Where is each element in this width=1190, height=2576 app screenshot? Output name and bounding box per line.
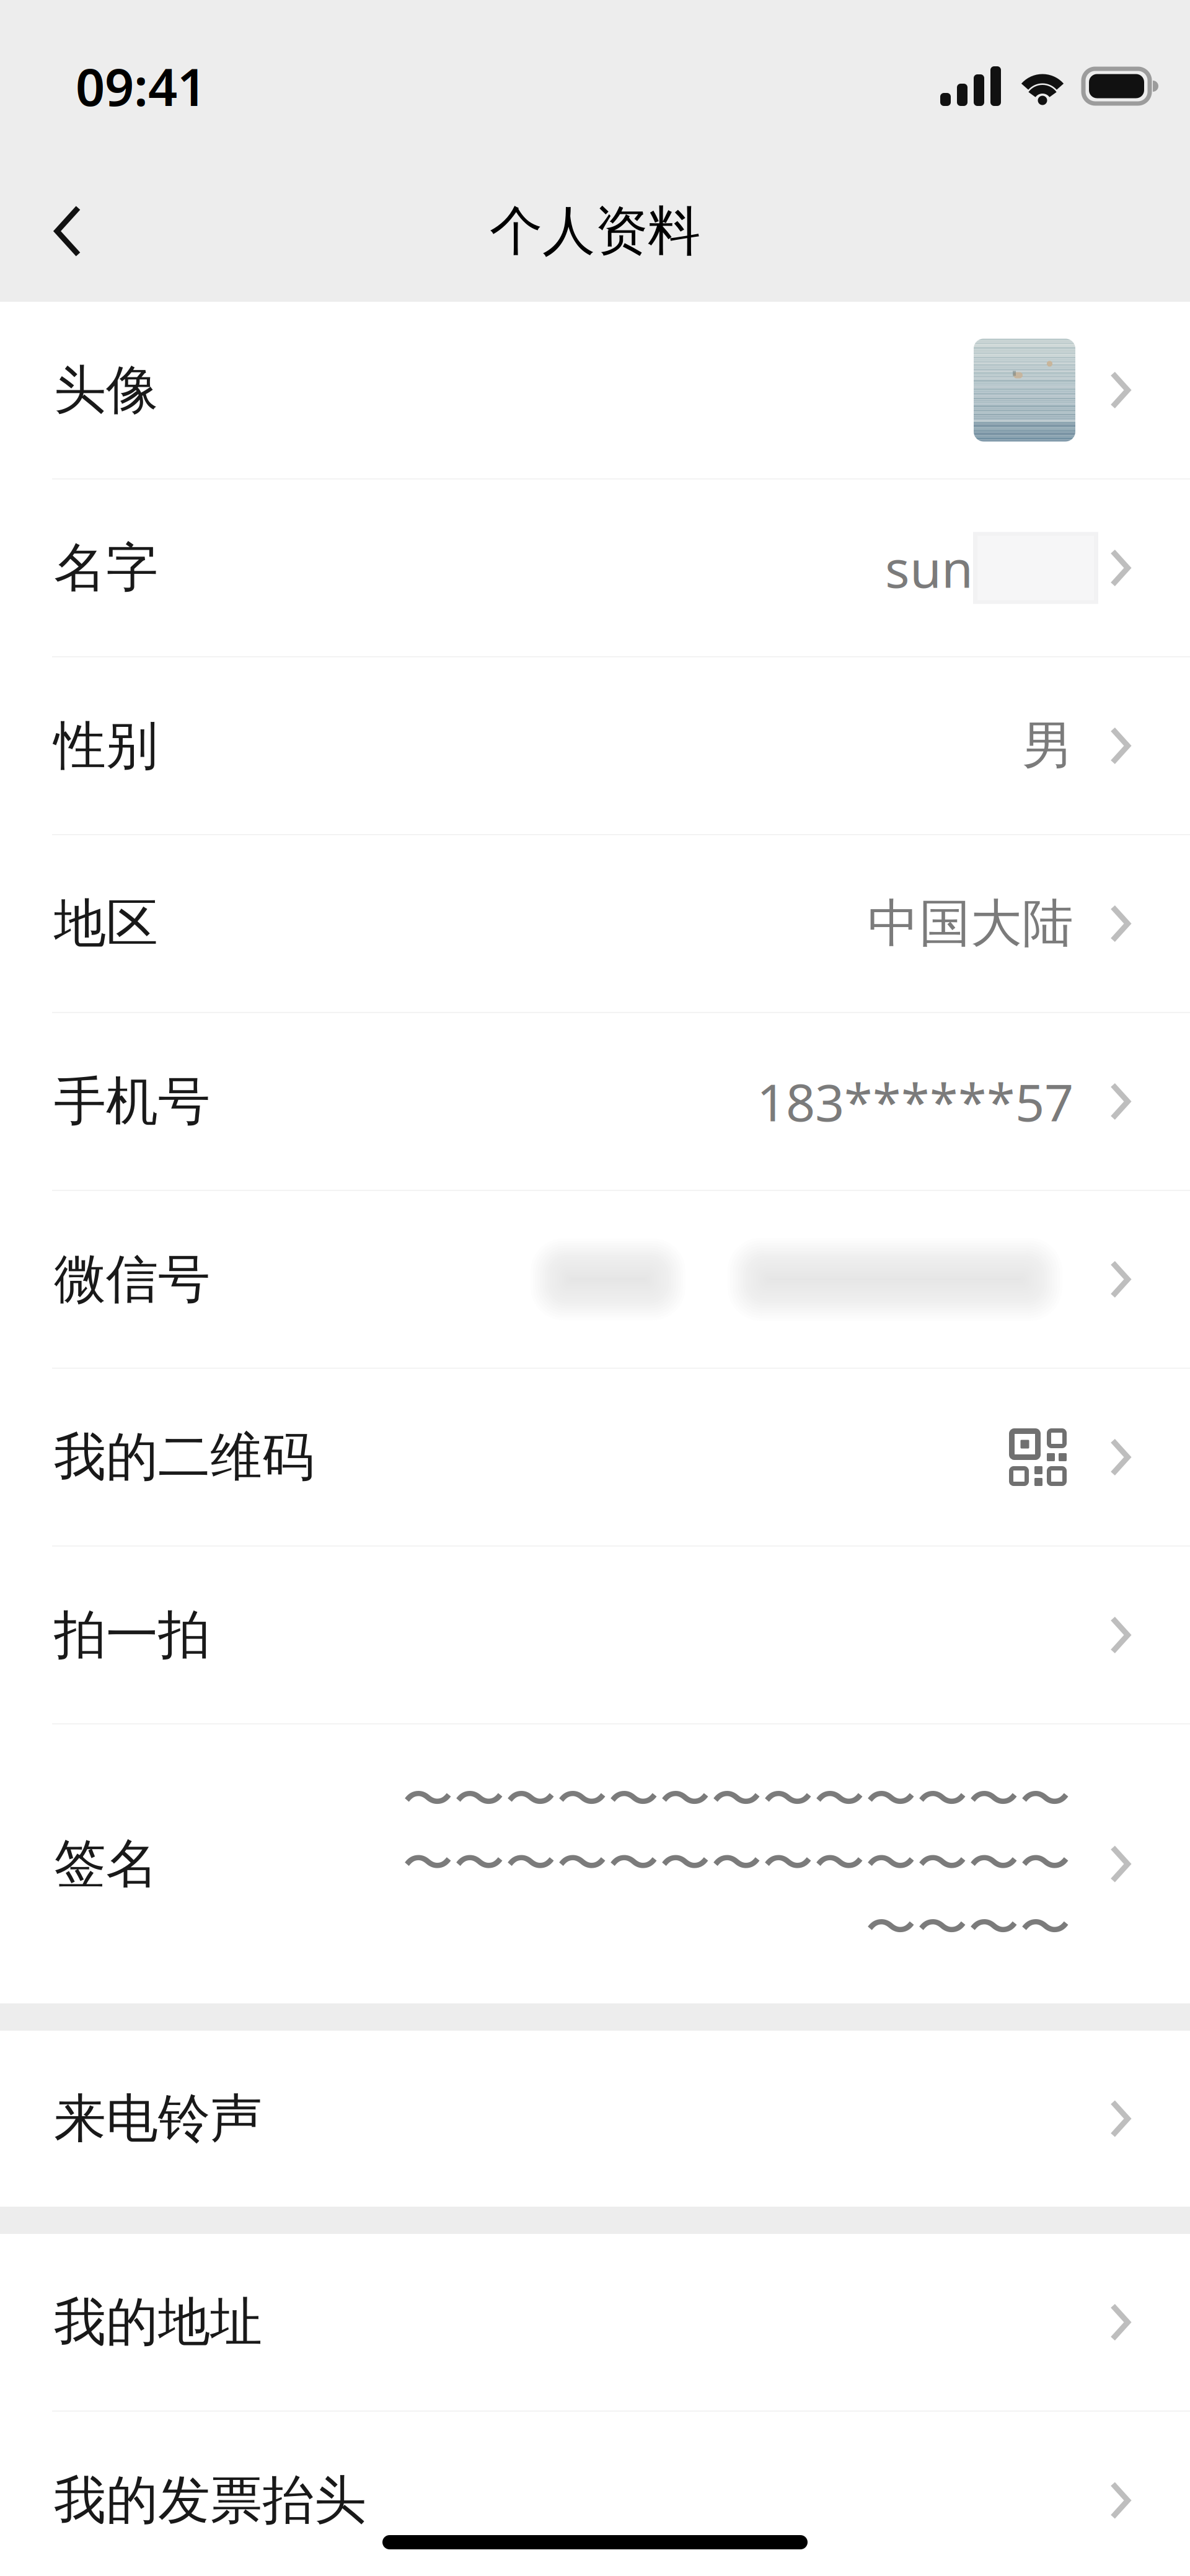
staticText: 〜〜〜〜 (865, 1897, 1071, 1960)
staticText: 手机号 (54, 1070, 210, 1133)
staticText: 〜〜〜〜〜〜〜〜〜〜〜〜〜 (402, 1768, 1071, 1831)
button[interactable]: 手机号 (0, 1013, 1190, 1191)
staticText: 拍一拍 (54, 1603, 210, 1667)
button[interactable]: 头像 (0, 302, 1190, 480)
staticText: 09:41 (76, 52, 206, 120)
staticText: 我的地址 (54, 2290, 262, 2354)
staticText: 头像 (54, 358, 158, 422)
staticText: 男 (1022, 714, 1073, 777)
button[interactable]: 性别 (0, 657, 1190, 835)
staticText: 来电铃声 (54, 2087, 262, 2151)
button[interactable]: 我的发票抬头 (0, 2412, 1190, 2575)
staticText: sun (885, 534, 973, 602)
button[interactable]: 微信号 (0, 1191, 1190, 1369)
button[interactable]: 名字 (0, 480, 1190, 657)
staticText: 中国大陆 (868, 892, 1073, 955)
staticText: 183******57 (757, 1067, 1073, 1135)
button[interactable]: 地区 (0, 835, 1190, 1013)
button[interactable]: Back (27, 185, 108, 278)
button[interactable]: 签名 (0, 1725, 1190, 2003)
staticText: 微信号 (54, 1247, 210, 1311)
button[interactable]: 拍一拍 (0, 1547, 1190, 1725)
button[interactable]: 来电铃声 (0, 2031, 1190, 2207)
staticText: 性别 (54, 714, 158, 778)
staticText: 〜〜〜〜〜〜〜〜〜〜〜〜〜 (402, 1833, 1071, 1895)
staticText: 个人资料 (490, 199, 700, 264)
button[interactable]: 我的二维码 (0, 1369, 1190, 1547)
staticText: 签名 (54, 1832, 158, 1896)
button[interactable]: 我的地址 (0, 2234, 1190, 2412)
staticText: 我的发票抬头 (54, 2468, 366, 2532)
staticText: 我的二维码 (54, 1425, 314, 1489)
staticText: 地区 (54, 892, 158, 956)
staticText: 名字 (54, 536, 158, 600)
